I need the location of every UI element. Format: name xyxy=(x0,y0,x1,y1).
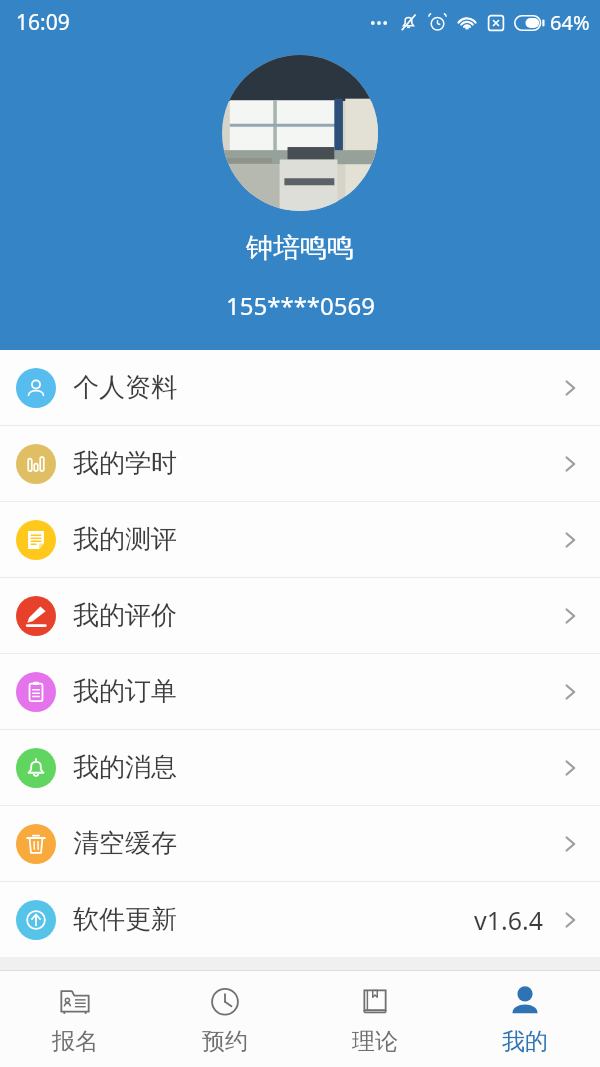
button[interactable]: 我的评价 xyxy=(0,578,600,653)
staticText: 理论 xyxy=(352,1027,398,1056)
staticText: 16:09 xyxy=(16,8,70,37)
staticText: 报名 xyxy=(52,1027,98,1056)
button[interactable]: 我的学时 xyxy=(0,426,600,501)
staticText: 我的消息 xyxy=(73,751,177,784)
staticText: 我的学时 xyxy=(73,447,177,480)
button[interactable]: 个人资料 xyxy=(0,350,600,425)
button[interactable]: Profile photo xyxy=(222,55,378,211)
button[interactable]: 报名 xyxy=(0,971,150,1067)
button[interactable]: 我的消息 xyxy=(0,730,600,805)
staticText: v1.6.4 xyxy=(474,903,544,937)
staticText: 64% xyxy=(550,9,590,36)
button[interactable]: 清空缓存 xyxy=(0,806,600,881)
staticText: 我的评价 xyxy=(73,599,177,632)
button[interactable]: 软件更新 xyxy=(0,882,600,957)
staticText: 155****0569 xyxy=(226,289,375,322)
staticText: 清空缓存 xyxy=(73,827,177,860)
staticText: 我的订单 xyxy=(73,675,177,708)
button[interactable]: 预约 xyxy=(150,971,300,1067)
staticText: 钟培鸣鸣 xyxy=(246,231,354,265)
button[interactable]: 我的测评 xyxy=(0,502,600,577)
button[interactable]: 我的订单 xyxy=(0,654,600,729)
staticText: 个人资料 xyxy=(73,371,177,404)
staticText: 我的测评 xyxy=(73,523,177,556)
button[interactable]: 我的 xyxy=(450,971,600,1067)
staticText: 我的 xyxy=(502,1027,548,1056)
staticText: 预约 xyxy=(202,1027,248,1056)
button[interactable]: 理论 xyxy=(300,971,450,1067)
staticText: 软件更新 xyxy=(73,903,177,936)
